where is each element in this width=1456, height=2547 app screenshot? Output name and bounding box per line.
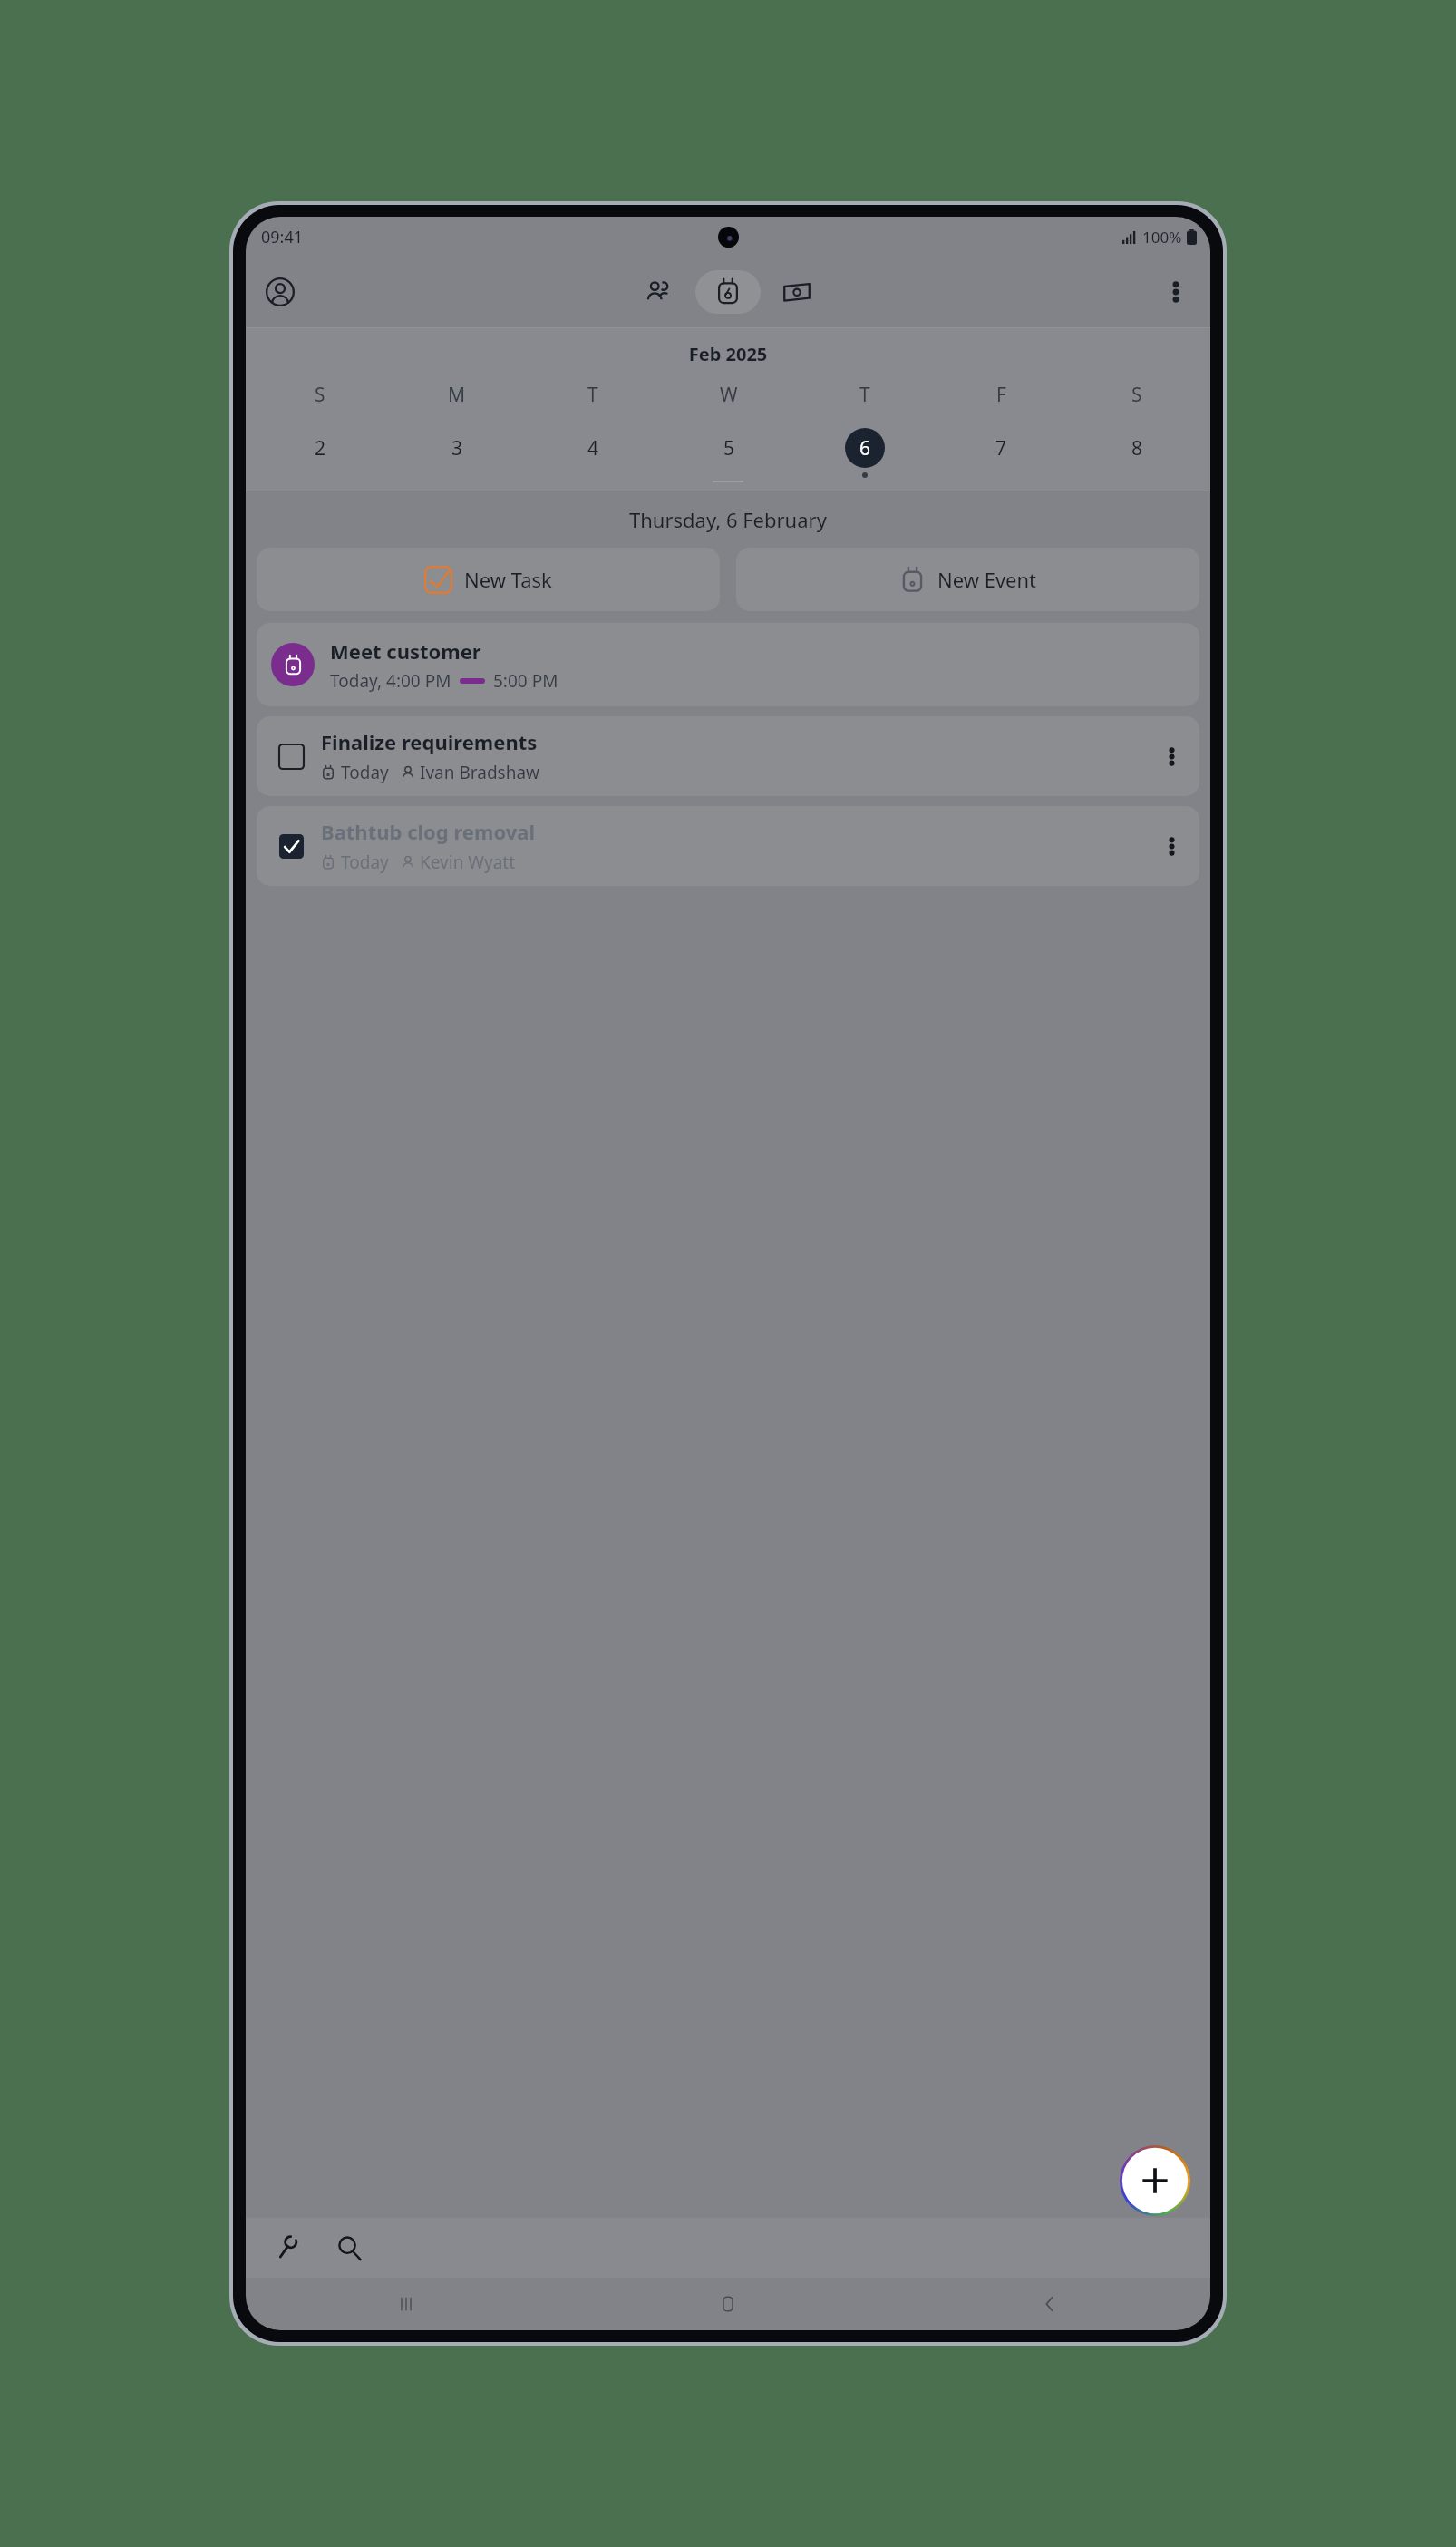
staticText: T — [859, 382, 870, 408]
button[interactable]: More options — [1152, 268, 1199, 316]
staticText: Today — [341, 761, 389, 784]
button[interactable]: Account — [257, 268, 304, 316]
button[interactable]: 4 — [525, 428, 661, 478]
button[interactable]: New Task — [257, 548, 720, 611]
button[interactable]: Completed task — [257, 806, 1199, 886]
staticText: 2 — [315, 435, 326, 462]
staticText: Feb 2025 — [246, 342, 1210, 366]
staticText: M — [448, 382, 466, 408]
staticText: F — [996, 382, 1006, 408]
staticText: New Task — [464, 566, 552, 593]
button[interactable]: New Event — [736, 548, 1199, 611]
button[interactable]: Money — [773, 268, 820, 316]
staticText: New Event — [937, 566, 1037, 593]
staticText: T — [587, 382, 598, 408]
button[interactable]: Recents — [246, 2278, 567, 2330]
staticText: S — [1131, 382, 1142, 408]
button[interactable]: 5 — [661, 428, 797, 478]
staticText: Kevin Wyatt — [420, 851, 516, 874]
button[interactable]: 8 — [1069, 428, 1205, 478]
button[interactable]: 6 — [797, 428, 933, 478]
button[interactable]: Calendar — [695, 270, 761, 314]
button[interactable]: 2 — [251, 428, 388, 478]
button[interactable]: 3 — [388, 428, 525, 478]
staticText: 6 — [859, 435, 871, 462]
staticText: S — [315, 382, 325, 408]
staticText: W — [720, 382, 738, 408]
button[interactable]: Add — [1120, 2145, 1190, 2216]
staticText: 7 — [995, 435, 1007, 462]
staticText: Thursday, 6 February — [629, 506, 827, 533]
staticText: Ivan Bradshaw — [420, 761, 540, 784]
button[interactable]: Task options — [1150, 825, 1192, 867]
button[interactable]: Mark complete — [273, 738, 309, 774]
button[interactable]: Mark complete — [257, 716, 1199, 796]
staticText: 3 — [451, 435, 463, 462]
button[interactable]: Task options — [1150, 735, 1192, 777]
staticText: Meet customer — [330, 637, 481, 665]
button[interactable]: Contacts — [636, 268, 683, 316]
button[interactable]: Search — [325, 2224, 373, 2271]
staticText: Today, 4:00 PM — [330, 669, 451, 693]
staticText: Finalize requirements — [321, 728, 538, 755]
button[interactable]: Meet customer — [257, 623, 1199, 706]
staticText: Today — [341, 851, 389, 874]
staticText: 8 — [1131, 435, 1143, 462]
button[interactable]: Completed task — [273, 828, 309, 864]
button[interactable]: Tools — [264, 2224, 311, 2271]
staticText: 5:00 PM — [493, 669, 558, 693]
staticText: 4 — [587, 435, 599, 462]
button[interactable]: 7 — [933, 428, 1069, 478]
staticText: Bathtub clog removal — [321, 818, 535, 845]
staticText: 100% — [1142, 227, 1182, 248]
button[interactable]: Back — [888, 2278, 1210, 2330]
staticText: 5 — [723, 435, 735, 462]
staticText: 09:41 — [261, 226, 304, 248]
